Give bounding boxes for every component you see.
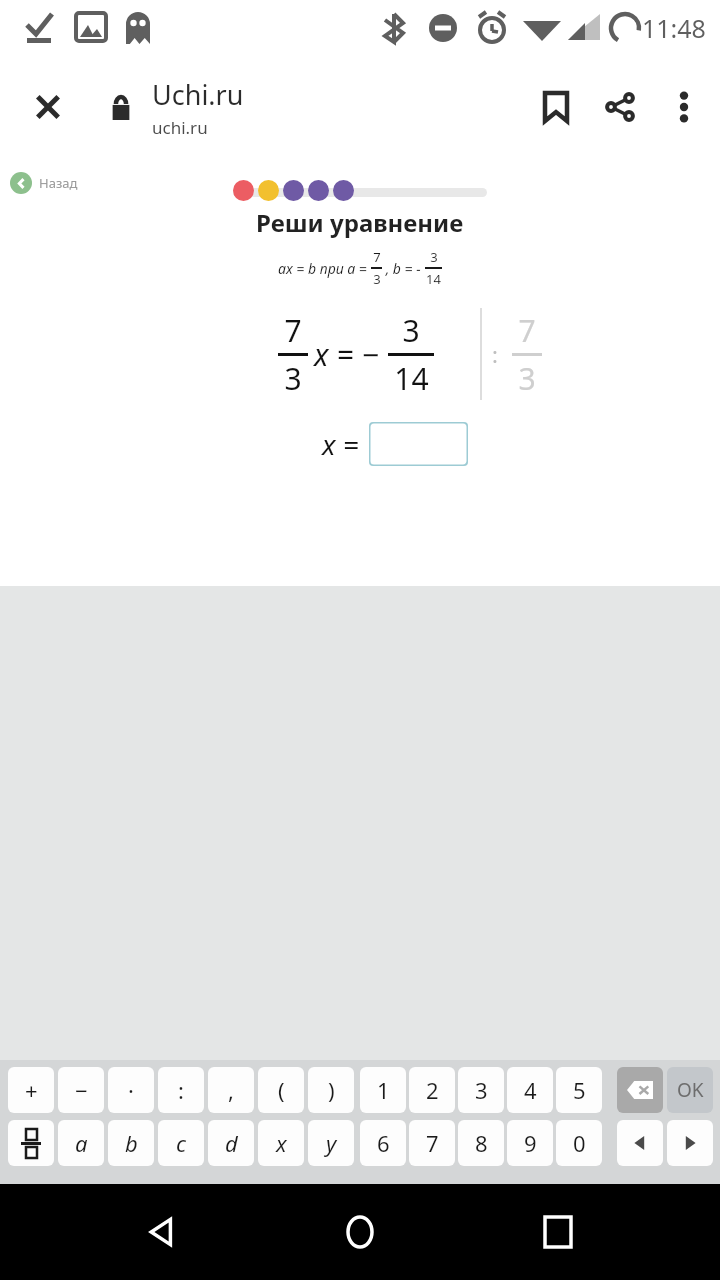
- staticText: ax = b при a =: [278, 259, 371, 278]
- button[interactable]: c: [158, 1120, 204, 1166]
- button[interactable]: 8: [458, 1120, 504, 1166]
- button[interactable]: 4: [507, 1067, 553, 1113]
- button[interactable]: 1: [360, 1067, 406, 1113]
- button[interactable]: [8, 1120, 54, 1166]
- button[interactable]: Back: [126, 1196, 198, 1268]
- staticText: 3: [475, 1075, 488, 1105]
- button[interactable]: OK: [667, 1067, 713, 1113]
- button[interactable]: :: [158, 1067, 204, 1113]
- staticText: 3: [402, 310, 420, 351]
- staticText: x: [276, 1128, 287, 1158]
- button[interactable]: Move right: [667, 1120, 713, 1166]
- button[interactable]: Recent apps: [522, 1196, 594, 1268]
- staticText: Назад: [39, 174, 78, 192]
- staticText: 14: [394, 358, 429, 399]
- staticText: OK: [677, 1077, 704, 1103]
- staticText: 8: [475, 1128, 488, 1158]
- button[interactable]: (: [258, 1067, 304, 1113]
- button[interactable]: 2: [409, 1067, 455, 1113]
- staticText: c: [176, 1128, 186, 1158]
- button[interactable]: 7: [409, 1120, 455, 1166]
- staticText: ): [328, 1075, 335, 1105]
- button[interactable]: More options: [652, 75, 716, 139]
- staticText: 3: [373, 270, 381, 288]
- button[interactable]: 3: [458, 1067, 504, 1113]
- staticText: +: [25, 1075, 38, 1105]
- button[interactable]: ,: [208, 1067, 254, 1113]
- staticText: 7: [373, 248, 381, 266]
- staticText: 3: [518, 358, 536, 399]
- staticText: , b = −: [382, 259, 425, 278]
- button[interactable]: x: [258, 1120, 304, 1166]
- button[interactable]: 5: [556, 1067, 602, 1113]
- staticText: x: [314, 334, 329, 375]
- staticText: 1: [377, 1075, 390, 1105]
- staticText: 7: [518, 310, 536, 351]
- button[interactable]: 9: [507, 1120, 553, 1166]
- staticText: 7: [426, 1128, 439, 1158]
- button[interactable]: Backspace: [617, 1067, 663, 1113]
- staticText: = −: [337, 334, 380, 375]
- staticText: 5: [573, 1075, 586, 1105]
- staticText: y: [326, 1128, 337, 1158]
- staticText: x =: [322, 425, 359, 463]
- staticText: 2: [426, 1075, 439, 1105]
- button[interactable]: y: [308, 1120, 354, 1166]
- button[interactable]: Home: [324, 1196, 396, 1268]
- button[interactable]: [369, 422, 468, 466]
- staticText: Реши уравнение: [256, 206, 464, 239]
- button[interactable]: 6: [360, 1120, 406, 1166]
- staticText: 9: [524, 1128, 537, 1158]
- button[interactable]: Move left: [617, 1120, 663, 1166]
- staticText: 0: [573, 1128, 586, 1158]
- staticText: ·: [128, 1075, 134, 1105]
- button[interactable]: Bookmark: [524, 75, 588, 139]
- staticText: 11:48: [642, 11, 706, 45]
- button[interactable]: +: [8, 1067, 54, 1113]
- staticText: −: [75, 1075, 88, 1105]
- staticText: 14: [426, 270, 441, 288]
- staticText: ,: [228, 1075, 234, 1105]
- staticText: :: [492, 339, 498, 369]
- button[interactable]: Назад: [10, 172, 78, 194]
- button[interactable]: ): [308, 1067, 354, 1113]
- staticText: 3: [284, 358, 302, 399]
- staticText: d: [225, 1128, 238, 1158]
- staticText: 4: [524, 1075, 537, 1105]
- staticText: 6: [377, 1128, 390, 1158]
- button[interactable]: Share: [588, 75, 652, 139]
- button[interactable]: Close: [16, 75, 80, 139]
- staticText: 3: [430, 248, 438, 266]
- staticText: uchi.ru: [152, 116, 208, 139]
- button[interactable]: −: [58, 1067, 104, 1113]
- button[interactable]: a: [58, 1120, 104, 1166]
- button[interactable]: b: [108, 1120, 154, 1166]
- button[interactable]: d: [208, 1120, 254, 1166]
- button[interactable]: ·: [108, 1067, 154, 1113]
- staticText: Uchi.ru: [152, 76, 244, 113]
- staticText: a: [75, 1128, 88, 1158]
- staticText: b: [125, 1128, 138, 1158]
- staticText: :: [178, 1075, 184, 1105]
- button[interactable]: 0: [556, 1120, 602, 1166]
- staticText: 7: [284, 310, 302, 351]
- staticText: (: [278, 1075, 285, 1105]
